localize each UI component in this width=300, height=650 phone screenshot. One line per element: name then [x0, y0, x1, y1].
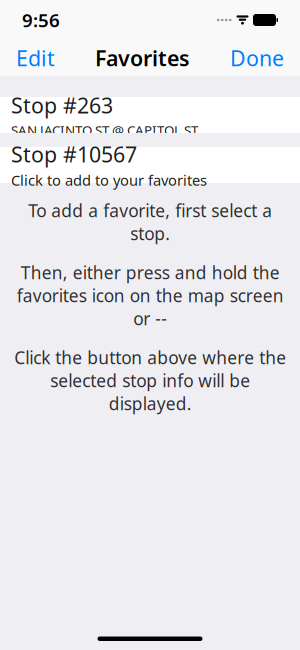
staticText: 9:56 [22, 8, 60, 32]
button[interactable]: Edit [8, 38, 63, 78]
staticText: Stop #263 [11, 91, 113, 119]
staticText: Done [230, 44, 284, 72]
staticText: Stop #10567 [11, 140, 137, 168]
staticText: Click to add to your favorites [11, 170, 207, 190]
staticText: Click the button above where the selecte… [14, 346, 286, 415]
button[interactable]: Stop #10567 [0, 147, 300, 183]
staticText: Edit [16, 44, 55, 72]
staticText: Favorites [95, 44, 190, 72]
staticText: To add a favorite, first select a stop. [28, 199, 272, 245]
staticText: SAN JACINTO ST @ CAPITOL ST [11, 121, 198, 139]
staticText: Then, either press and hold the favorite… [16, 261, 283, 330]
button[interactable]: Stop #263 [0, 97, 300, 133]
button[interactable]: Done [222, 38, 292, 78]
